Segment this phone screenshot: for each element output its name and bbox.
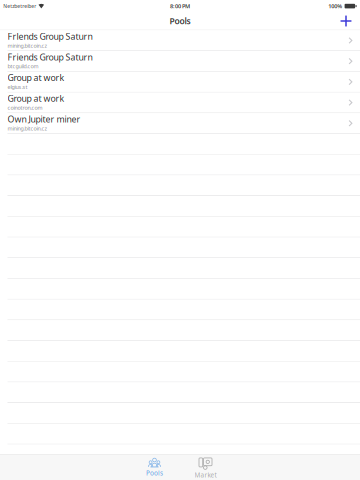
staticText: mining.bitcoin.cz [8, 125, 48, 132]
button[interactable]: Own Jupiter miner [0, 113, 360, 134]
staticText: 8:00 PM [170, 2, 190, 10]
staticText: Pools [169, 15, 190, 27]
staticText: Pools [146, 469, 163, 477]
button[interactable]: Pools [129, 455, 180, 480]
button[interactable]: Frlends Group Saturn [0, 30, 360, 51]
button[interactable]: Add pool [332, 12, 360, 30]
staticText: Own Jupiter miner [8, 113, 81, 125]
button[interactable]: Friends Group Saturn [0, 51, 360, 72]
staticText: btcguild.com [8, 63, 39, 70]
button[interactable]: Market [180, 455, 231, 480]
button[interactable]: Group at work [0, 72, 360, 92]
staticText: Netzbetreiber [3, 3, 36, 9]
staticText: mining.bitcoin.cz [8, 42, 48, 49]
staticText: Group at work [8, 92, 65, 104]
staticText: Friends Group Saturn [8, 51, 93, 63]
staticText: Market [194, 471, 216, 479]
button[interactable]: Group at work [0, 92, 360, 113]
staticText: 100% [328, 2, 342, 10]
staticText: Frlends Group Saturn [8, 30, 93, 42]
staticText: elgius.st [8, 83, 28, 91]
staticText: coinotron.com [8, 104, 43, 111]
staticText: Group at work [8, 72, 65, 84]
